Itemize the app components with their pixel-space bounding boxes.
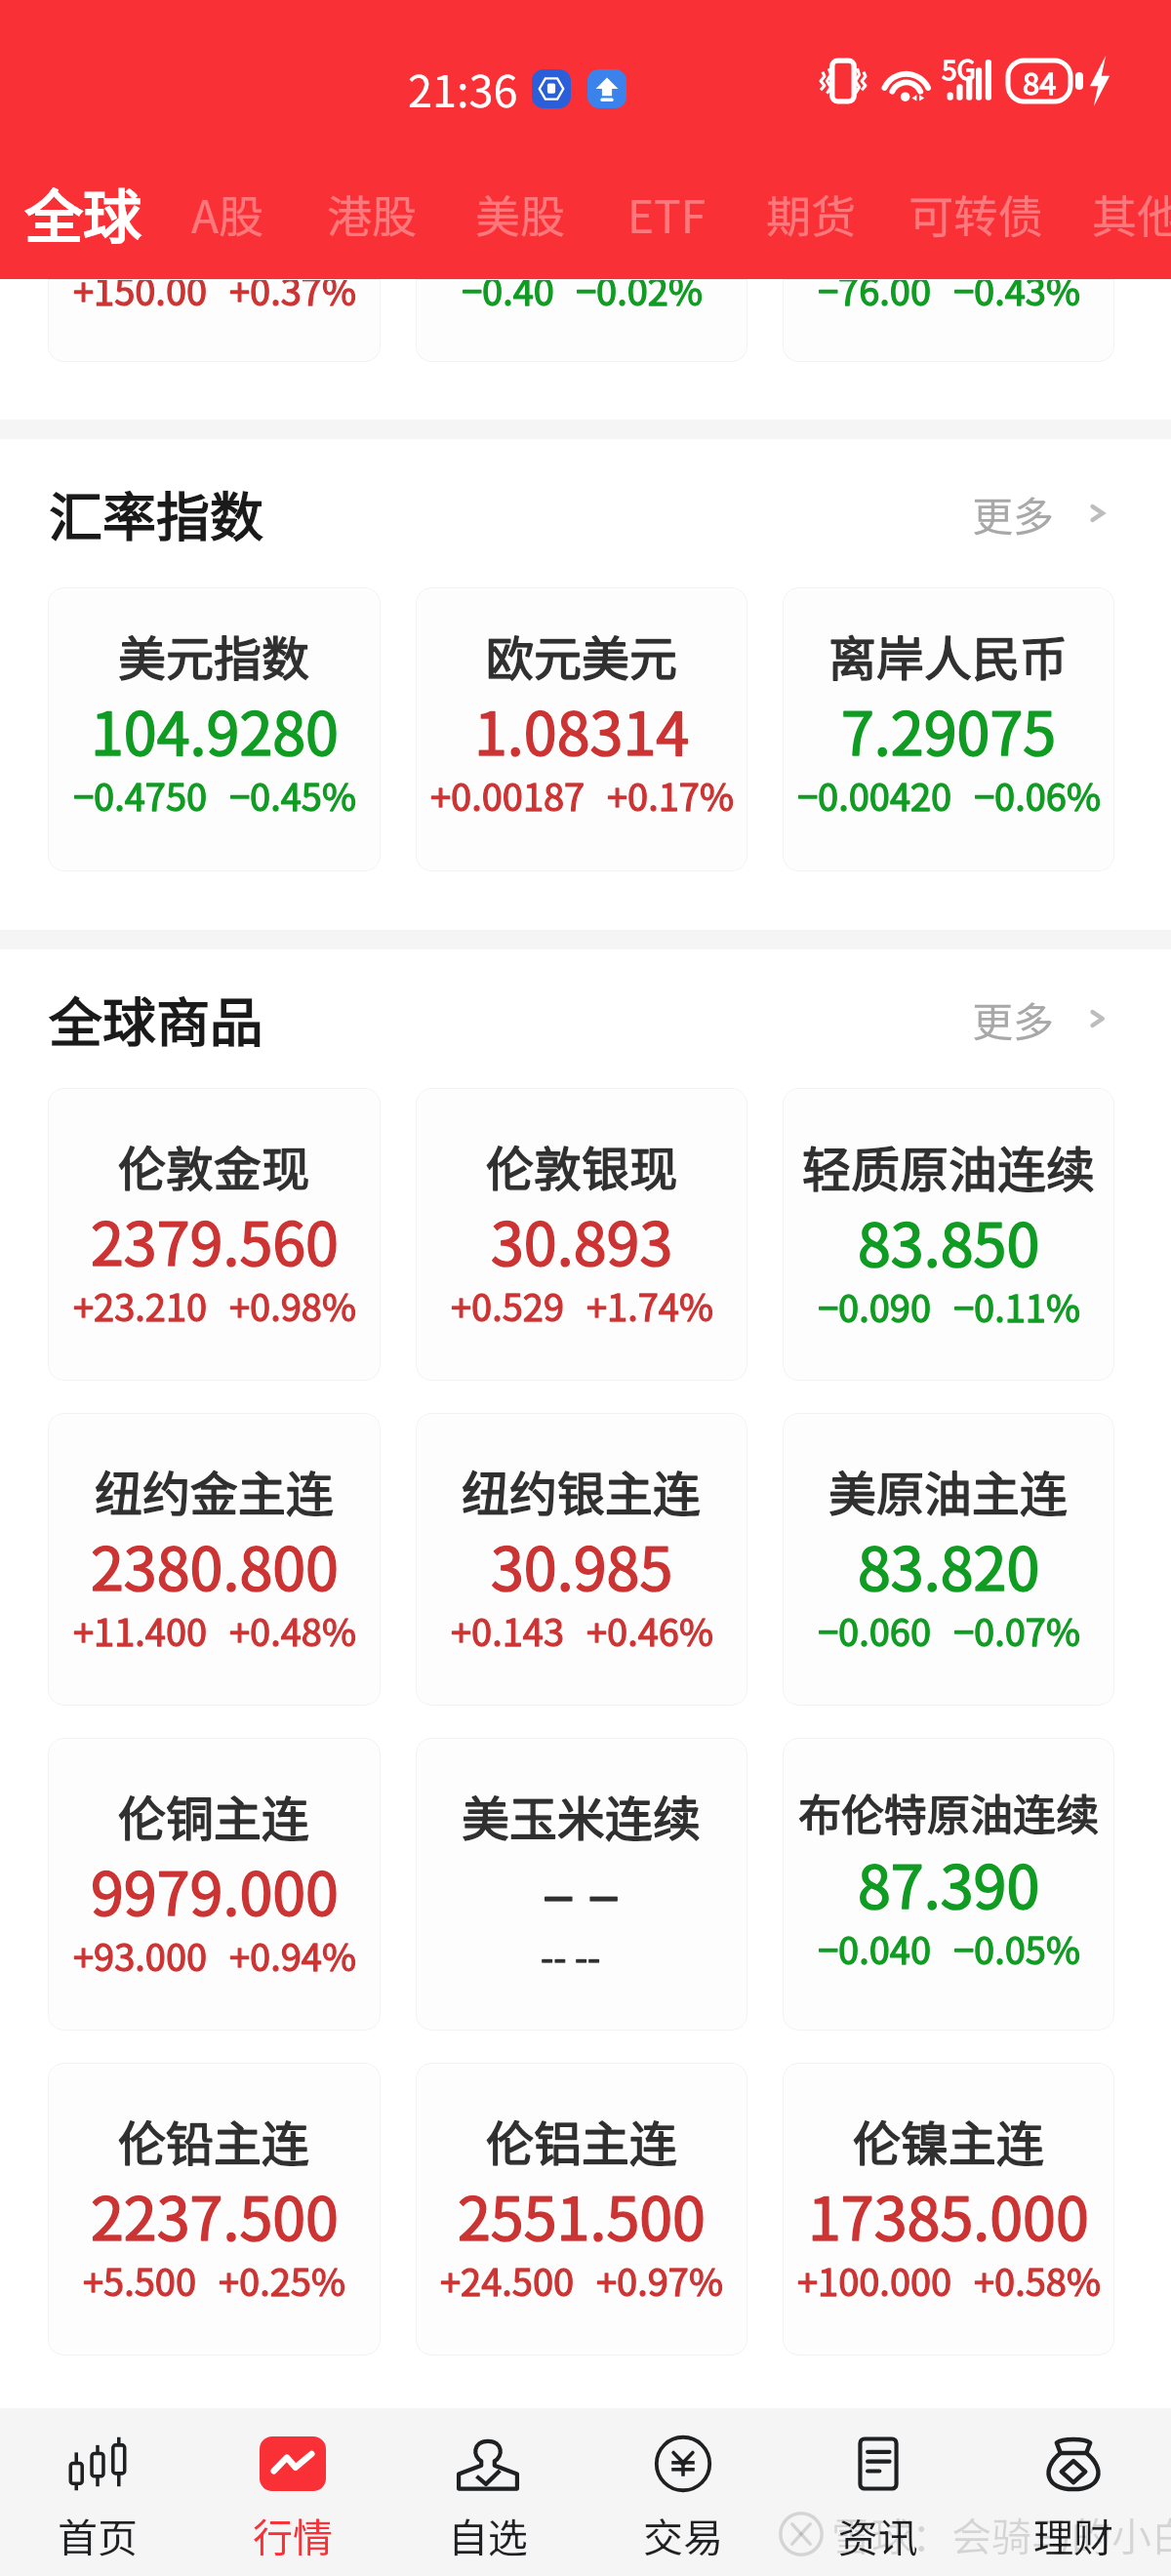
button[interactable]: 纽约金主连 xyxy=(48,1413,381,1706)
staticText: −0.4750 xyxy=(73,768,208,822)
staticText: 104.9280 xyxy=(91,686,339,772)
staticText: −0.45% xyxy=(229,768,356,822)
staticText: −0.11% xyxy=(953,1279,1080,1333)
button[interactable]: 轻质原油连续 xyxy=(783,1088,1114,1381)
staticText: 84 xyxy=(1023,60,1057,103)
staticText: 5G xyxy=(942,49,976,89)
button[interactable]: 布伦特原油连续 xyxy=(783,1738,1114,2031)
button[interactable]: 美股 xyxy=(472,181,568,247)
staticText: -- -- xyxy=(541,1928,601,1982)
button[interactable]: 交易 xyxy=(585,2435,781,2563)
staticText: 2237.500 xyxy=(91,2171,339,2257)
button[interactable]: A股 xyxy=(188,181,266,247)
staticText: 资讯 xyxy=(838,2506,918,2563)
staticText: +0.46% xyxy=(586,1603,713,1657)
button[interactable]: 欧元美元 xyxy=(416,587,747,871)
button[interactable]: 伦敦金现 xyxy=(48,1088,381,1381)
button[interactable]: 资讯 xyxy=(781,2435,976,2563)
button[interactable]: 美元指数 xyxy=(48,587,381,871)
staticText: +0.58% xyxy=(974,2253,1101,2307)
staticText: −0.06% xyxy=(974,768,1101,822)
button[interactable]: 伦铝主连 xyxy=(416,2063,747,2355)
staticText: 87.390 xyxy=(858,1839,1040,1925)
button[interactable]: 行情 xyxy=(195,2435,390,2563)
staticText: 1.08314 xyxy=(474,686,690,772)
staticText: 行情 xyxy=(253,2506,333,2563)
button[interactable]: 自选 xyxy=(390,2435,585,2563)
staticText: +0.97% xyxy=(596,2253,723,2307)
staticText: 伦铅主连 xyxy=(118,2106,310,2175)
button[interactable]: 美玉米连续 xyxy=(416,1738,747,2031)
button[interactable]: 全球 xyxy=(21,170,144,255)
staticText: +0.00187 xyxy=(430,768,585,822)
button[interactable]: 伦敦银现 xyxy=(416,1088,747,1381)
staticText: 伦敦银现 xyxy=(486,1131,678,1200)
staticText: 2380.800 xyxy=(91,1521,339,1607)
staticText: −0.40 xyxy=(462,279,554,316)
staticText: +93.000 xyxy=(73,1928,208,1982)
staticText: −0.05% xyxy=(953,1921,1080,1975)
staticText: 伦敦金现 xyxy=(118,1131,310,1200)
staticText: −0.43% xyxy=(953,279,1080,316)
staticText: 美玉米连续 xyxy=(462,1781,702,1850)
staticText: A股 xyxy=(191,181,263,247)
staticText: 9979.000 xyxy=(91,1846,339,1932)
staticText: 2380.800 xyxy=(91,1521,339,1607)
staticText: 美玉米连续 xyxy=(462,1781,702,1850)
button[interactable]: 伦铅主连 xyxy=(48,2063,381,2355)
staticText: 纽约银主连 xyxy=(462,1456,702,1525)
staticText: −0.45% xyxy=(229,768,356,822)
button[interactable]: 可转债 xyxy=(906,181,1046,247)
button[interactable]: 全球商品 xyxy=(0,949,1171,1088)
button[interactable]: 理财 xyxy=(976,2435,1171,2563)
button[interactable]: −76.00 xyxy=(783,279,1114,362)
staticText: 伦敦金现 xyxy=(118,1131,310,1200)
staticText: 83.820 xyxy=(858,1521,1040,1607)
staticText: 2551.500 xyxy=(458,2171,706,2257)
button[interactable]: ETF xyxy=(625,181,709,247)
staticText: 美元指数 xyxy=(118,621,310,690)
button[interactable]: 其他 xyxy=(1089,181,1171,247)
staticText: 首页 xyxy=(58,2506,138,2563)
staticText: 伦镍主连 xyxy=(853,2106,1045,2175)
staticText: 83.850 xyxy=(858,1197,1040,1283)
button[interactable]: 离岸人民币 xyxy=(783,587,1114,871)
button[interactable]: 美原油主连 xyxy=(783,1413,1114,1706)
staticText: −0.05% xyxy=(953,1921,1080,1975)
button[interactable]: 纽约银主连 xyxy=(416,1413,747,1706)
staticText: 布伦特原油连续 xyxy=(798,1781,1099,1843)
button[interactable]: 港股 xyxy=(324,181,420,247)
button[interactable]: 伦镍主连 xyxy=(783,2063,1114,2355)
staticText: +0.143 xyxy=(451,1603,565,1657)
staticText: −0.090 xyxy=(818,1279,932,1333)
button[interactable]: 期货 xyxy=(763,181,859,247)
staticText: 1.08314 xyxy=(474,686,690,772)
button[interactable]: 伦铜主连 xyxy=(48,1738,381,2031)
staticText: 全球 xyxy=(24,170,141,255)
staticText: +0.25% xyxy=(219,2253,345,2307)
staticText: 83.820 xyxy=(858,1521,1040,1607)
staticText: 30.893 xyxy=(491,1196,673,1282)
button[interactable]: −0.40 xyxy=(416,279,747,362)
staticText: 美股 xyxy=(475,181,565,247)
staticText: −0.40 xyxy=(462,279,554,316)
staticText: +5.500 xyxy=(83,2253,197,2307)
staticText: 其他 xyxy=(1092,181,1171,247)
button[interactable]: 首页 xyxy=(0,2435,195,2563)
staticText: +0.97% xyxy=(596,2253,723,2307)
staticText: 汇率指数 xyxy=(49,474,264,552)
button[interactable]: 汇率指数 xyxy=(0,439,1171,587)
staticText: +0.37% xyxy=(229,279,356,316)
staticText: 30.985 xyxy=(491,1521,673,1607)
staticText: 纽约金主连 xyxy=(95,1456,335,1525)
staticText: 伦铜主连 xyxy=(118,1781,310,1850)
staticText: +24.500 xyxy=(440,2253,575,2307)
staticText: −0.06% xyxy=(974,768,1101,822)
staticText: 可转债 xyxy=(909,181,1043,247)
staticText: +150.00 xyxy=(73,279,208,316)
staticText: +11.400 xyxy=(73,1603,208,1657)
staticText: 7.29075 xyxy=(841,686,1057,772)
staticText: +150.00 xyxy=(73,279,208,316)
staticText: +0.17% xyxy=(607,768,734,822)
button[interactable]: +150.00 xyxy=(48,279,381,362)
